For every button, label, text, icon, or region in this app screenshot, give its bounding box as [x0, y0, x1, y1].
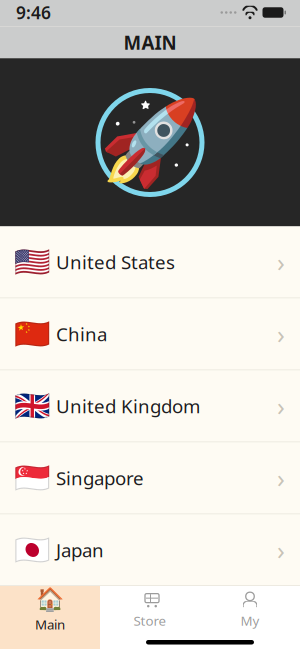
staticText: China: [56, 322, 107, 346]
staticText: ›: [277, 461, 285, 495]
button[interactable]: 🇯🇵: [0, 514, 300, 585]
staticText: 🇬🇧: [14, 389, 51, 423]
staticText: 🇺🇸: [14, 245, 51, 279]
staticText: ›: [277, 245, 285, 279]
staticText: 🇯🇵: [14, 533, 51, 567]
staticText: United Kingdom: [56, 394, 200, 418]
staticText: Japan: [56, 538, 104, 562]
button[interactable]: 🇨🇳: [0, 298, 300, 369]
staticText: 🚀: [98, 95, 201, 190]
staticText: 🇸🇬: [14, 461, 51, 495]
button[interactable]: 🇸🇬: [0, 442, 300, 513]
staticText: ›: [277, 317, 285, 351]
staticText: MAIN: [123, 30, 176, 55]
button[interactable]: 🏠: [0, 586, 100, 634]
button[interactable]: 🇬🇧: [0, 370, 300, 441]
staticText: Singapore: [56, 466, 144, 490]
staticText: Main: [35, 616, 65, 633]
staticText: Store: [133, 612, 166, 629]
staticText: 🏠: [36, 587, 64, 613]
button[interactable]: 🇺🇸: [0, 226, 300, 297]
button[interactable]: My: [200, 586, 300, 634]
staticText: ›: [277, 389, 285, 423]
staticText: 9:46: [16, 1, 51, 24]
staticText: United States: [56, 250, 175, 274]
staticText: 🇨🇳: [14, 317, 51, 351]
staticText: ›: [277, 533, 285, 567]
staticText: My: [240, 612, 259, 629]
button[interactable]: Store: [100, 586, 200, 634]
